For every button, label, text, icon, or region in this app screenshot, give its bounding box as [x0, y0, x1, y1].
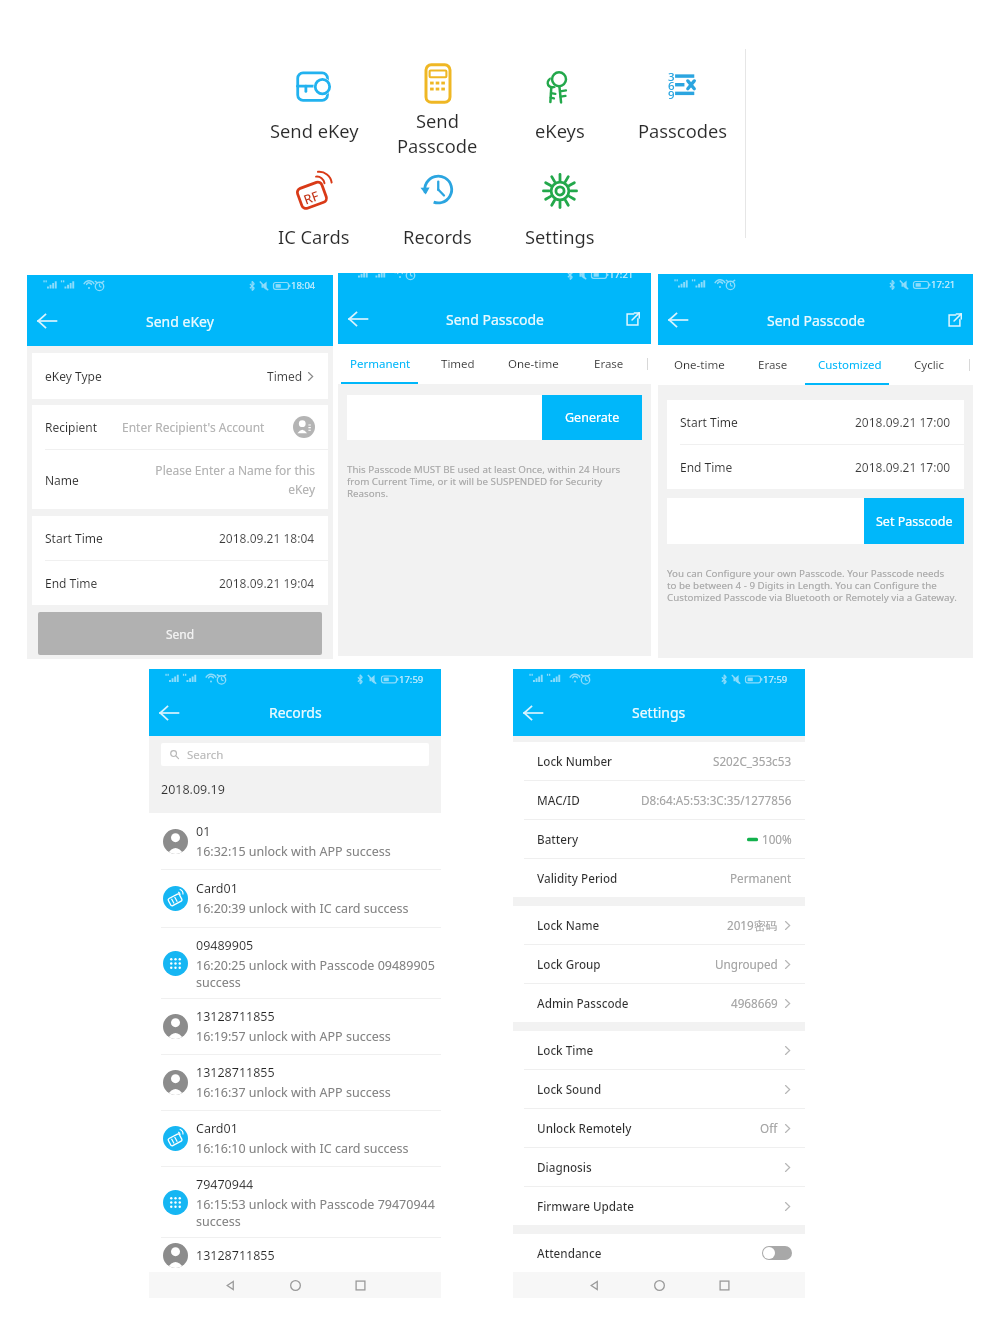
staticText: Send Passcode [446, 310, 544, 329]
button[interactable]: Back [581, 1272, 607, 1298]
button[interactable]: 79470944 [149, 1167, 441, 1237]
staticText: Attendance [537, 1245, 602, 1261]
button[interactable]: Set Passcode [864, 498, 964, 544]
button[interactable]: Back [518, 698, 548, 728]
staticText: Enter Recipient's Account [122, 419, 265, 435]
button[interactable]: End Time [32, 561, 328, 605]
staticText: Passcodes [638, 118, 728, 143]
button[interactable]: Card01 [149, 870, 441, 927]
staticText: 2018.09.21 19:04 [219, 575, 315, 591]
staticText: Erase [758, 357, 788, 373]
button[interactable]: Send [38, 612, 322, 655]
button[interactable]: Timed [423, 344, 492, 384]
button[interactable]: Erase [575, 344, 643, 384]
button[interactable]: Back [154, 698, 184, 728]
button[interactable]: Back [343, 304, 373, 334]
staticText: Set Passcode [876, 513, 953, 530]
button[interactable]: Firmware Update [513, 1187, 805, 1225]
button[interactable]: Share [941, 307, 967, 333]
staticText: Lock Number [537, 753, 613, 769]
button[interactable]: Erase [740, 345, 805, 385]
staticText: 4968669 [731, 995, 778, 1011]
staticText: eKeys [535, 118, 585, 143]
button[interactable]: Recent apps [347, 1272, 373, 1298]
staticText: One-time [508, 356, 559, 372]
staticText: One-time [674, 357, 725, 373]
button[interactable]: Back [217, 1272, 243, 1298]
staticText: 2018.09.21 18:04 [219, 530, 315, 546]
button[interactable]: Recent apps [711, 1272, 737, 1298]
button[interactable]: Lock Time [513, 1031, 805, 1069]
button[interactable]: End Time [667, 445, 964, 489]
button[interactable]: 13128711855 [149, 1055, 441, 1110]
staticText: eKey Type [45, 368, 102, 384]
button[interactable]: Settings [498, 166, 622, 252]
button[interactable]: Records [375, 166, 499, 252]
staticText: Lock Sound [537, 1081, 602, 1097]
button[interactable]: Lock Number [513, 742, 805, 780]
button[interactable]: Back [32, 306, 62, 336]
button[interactable]: Attendance toggle [762, 1246, 792, 1260]
button[interactable]: Choose contact [293, 416, 315, 438]
button[interactable]: One-time [658, 345, 740, 385]
button[interactable]: MAC/ID [513, 781, 805, 819]
button[interactable]: Search [161, 743, 429, 766]
button[interactable]: Card01 [149, 1111, 441, 1166]
button[interactable]: eKey Type [32, 353, 328, 399]
button[interactable]: One-time [492, 344, 575, 384]
button[interactable]: 09489905 [149, 928, 441, 998]
staticText: This Passcode MUST BE used at least Once… [347, 463, 621, 500]
staticText: 79470944 [196, 1176, 254, 1193]
staticText: 16:16:10 unlock with IC card success [196, 1140, 409, 1157]
staticText: Customized [818, 357, 882, 373]
button[interactable]: Attendance [513, 1234, 805, 1272]
button[interactable]: Lock Group [513, 945, 805, 983]
button[interactable]: Admin Passcode [513, 984, 805, 1022]
button[interactable]: Cyclic [894, 345, 965, 385]
button[interactable]: Permanent [338, 344, 423, 384]
button[interactable]: Lock Sound [513, 1070, 805, 1108]
button[interactable]: eKeys [498, 60, 622, 146]
button[interactable]: Back [663, 305, 693, 335]
staticText: D8:64:A5:53:3C:35/1277856 [641, 792, 792, 808]
button[interactable]: Customized [805, 345, 894, 385]
staticText: 16:19:57 unlock with APP success [196, 1028, 391, 1045]
staticText: Battery [537, 831, 579, 847]
button[interactable]: Home [282, 1272, 308, 1298]
staticText: Validity Period [537, 870, 618, 886]
staticText: 13128711855 [196, 1008, 275, 1025]
staticText: 100% [762, 831, 792, 847]
button[interactable]: Home [646, 1272, 672, 1298]
button[interactable]: Start Time [32, 516, 328, 560]
button[interactable]: Share [619, 306, 645, 332]
button[interactable]: Validity Period [513, 859, 805, 897]
button[interactable]: Unlock Remotely [513, 1109, 805, 1147]
button[interactable]: Generate [542, 395, 642, 440]
button[interactable]: Start Time [667, 400, 964, 444]
staticText: Passcode [397, 133, 478, 158]
staticText: 17:59 [763, 673, 788, 686]
staticText: End Time [680, 459, 733, 475]
staticText: 09489905 [196, 937, 254, 954]
button[interactable]: Send [375, 60, 499, 164]
staticText: Start Time [45, 530, 103, 546]
button[interactable]: RF [252, 166, 376, 252]
button[interactable]: 13128711855 [149, 999, 441, 1054]
staticText: 2018.09.21 17:00 [855, 414, 951, 430]
button[interactable]: 01 [149, 813, 441, 869]
button[interactable]: Diagnosis [513, 1148, 805, 1186]
staticText: You can Configure your own Passcode. You… [667, 567, 957, 604]
button[interactable]: Send eKey [252, 60, 376, 146]
staticText: 17:59 [399, 673, 424, 686]
staticText: Diagnosis [537, 1159, 592, 1175]
button[interactable]: 13128711855 [149, 1238, 441, 1272]
button[interactable]: Lock Name [513, 906, 805, 944]
button[interactable]: Battery [513, 820, 805, 858]
button[interactable]: Recipient [32, 405, 328, 449]
staticText: Cyclic [914, 357, 945, 373]
button[interactable]: 3 6 9 [621, 60, 745, 146]
staticText: Lock Name [537, 917, 600, 933]
button[interactable]: Name [32, 450, 328, 509]
staticText: 16:16:37 unlock with APP success [196, 1084, 391, 1101]
staticText: 16:20:39 unlock with IC card success [196, 900, 409, 917]
